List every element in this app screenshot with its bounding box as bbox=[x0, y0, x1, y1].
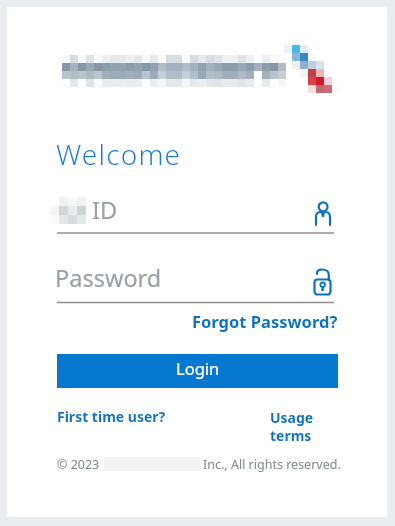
staticText: ID bbox=[92, 194, 118, 226]
staticText: Password bbox=[55, 262, 162, 294]
button[interactable]: Usage terms bbox=[270, 408, 314, 445]
staticText: Login bbox=[176, 357, 220, 379]
button[interactable]: Forgot Password? bbox=[180, 310, 338, 332]
staticText: © 2023 bbox=[57, 456, 100, 473]
staticText: Usage terms bbox=[270, 408, 314, 445]
staticText: Welcome bbox=[56, 135, 182, 173]
staticText: Forgot Password? bbox=[192, 310, 338, 332]
button[interactable]: First time user? bbox=[57, 407, 166, 426]
staticText: Inc., All rights reserved. bbox=[203, 456, 341, 473]
staticText: First time user? bbox=[57, 407, 166, 426]
button[interactable]: Login bbox=[57, 354, 338, 388]
